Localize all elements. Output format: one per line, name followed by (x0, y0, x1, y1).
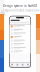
button[interactable] (9, 32, 30, 35)
button[interactable]: Tab (25, 64, 30, 66)
staticText: Components and tokens for iOS (0, 9, 39, 16)
button[interactable] (9, 35, 30, 39)
button[interactable] (9, 42, 30, 46)
button[interactable] (9, 28, 30, 32)
button[interactable] (9, 46, 30, 50)
button[interactable] (9, 50, 30, 53)
button[interactable] (9, 39, 30, 42)
button[interactable]: Tab (20, 64, 25, 66)
staticText: Design system in SwiftUI (3, 4, 37, 8)
button[interactable] (9, 24, 30, 28)
button[interactable]: Tab (9, 64, 15, 66)
button[interactable]: Tab (15, 64, 20, 66)
